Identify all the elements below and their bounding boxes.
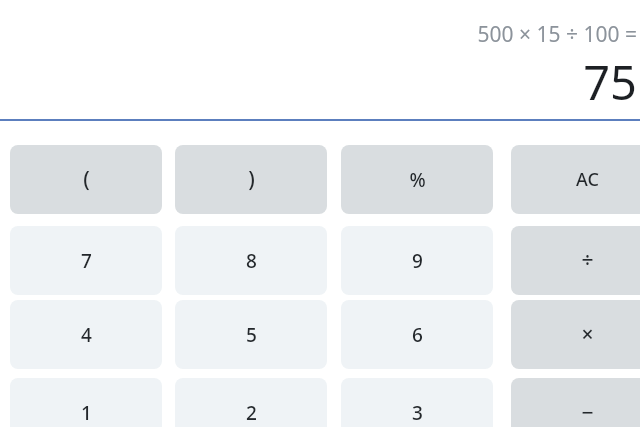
- staticText: 500 × 15 ÷ 100 =: [0, 20, 637, 49]
- staticText: ×: [581, 320, 594, 349]
- button[interactable]: 2: [175, 378, 327, 427]
- staticText: 9: [412, 248, 423, 274]
- staticText: 2: [246, 400, 257, 426]
- button[interactable]: −: [511, 378, 640, 427]
- staticText: 75: [0, 50, 637, 114]
- button[interactable]: 4: [10, 300, 162, 369]
- button[interactable]: ×: [511, 300, 640, 369]
- button[interactable]: 3: [341, 378, 493, 427]
- staticText: ): [248, 165, 255, 194]
- staticText: 5: [246, 322, 257, 348]
- button[interactable]: %: [341, 145, 493, 214]
- button[interactable]: 9: [341, 226, 493, 295]
- button[interactable]: 8: [175, 226, 327, 295]
- button[interactable]: 1: [10, 378, 162, 427]
- staticText: 1: [81, 400, 92, 426]
- staticText: ÷: [581, 246, 594, 275]
- button[interactable]: ÷: [511, 226, 640, 295]
- button[interactable]: 7: [10, 226, 162, 295]
- button[interactable]: 5: [175, 300, 327, 369]
- staticText: 6: [412, 322, 423, 348]
- staticText: AC: [576, 167, 599, 192]
- button[interactable]: AC: [511, 145, 640, 214]
- staticText: 3: [412, 400, 423, 426]
- staticText: 7: [81, 248, 92, 274]
- button[interactable]: 6: [341, 300, 493, 369]
- staticText: %: [409, 167, 426, 193]
- staticText: 8: [246, 248, 257, 274]
- staticText: −: [581, 398, 594, 427]
- button[interactable]: (: [10, 145, 162, 214]
- staticText: 4: [81, 322, 92, 348]
- button[interactable]: ): [175, 145, 327, 214]
- staticText: (: [83, 165, 90, 194]
